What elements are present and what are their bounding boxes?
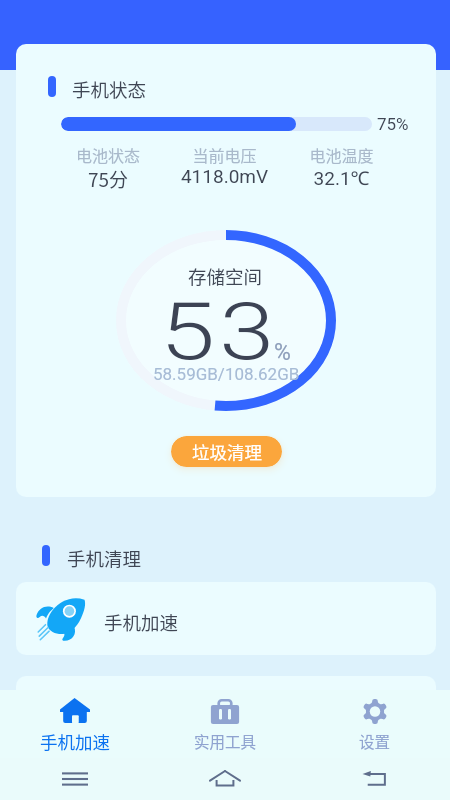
button[interactable]: 实用工具	[150, 696, 300, 752]
staticText: 4118.0mV	[166, 165, 283, 187]
button[interactable]: 手机加速	[0, 695, 150, 754]
staticText: 存储空间	[188, 263, 263, 290]
staticText: 75分	[50, 165, 166, 193]
button[interactable]: 垃圾清理	[171, 436, 282, 467]
staticText: 手机状态	[72, 76, 147, 103]
staticText: 手机清理	[67, 545, 142, 572]
staticText: 手机加速	[104, 609, 179, 636]
staticText: 电池温度	[283, 143, 400, 166]
staticText: %	[274, 339, 291, 366]
button[interactable]: 设置	[300, 696, 450, 752]
staticText: 75%	[377, 114, 409, 134]
staticText: 手机加速	[40, 729, 110, 754]
button[interactable]: 手机加速	[16, 582, 436, 655]
staticText: 垃圾清理	[192, 439, 262, 464]
button[interactable]	[16, 676, 436, 749]
staticText: 58.59GB/108.62GB	[153, 364, 300, 384]
staticText: 53	[160, 285, 279, 379]
staticText: 实用工具	[194, 730, 257, 752]
staticText: 电池状态	[50, 143, 166, 166]
other: Back	[362, 770, 388, 788]
staticText: 当前电压	[166, 143, 283, 166]
other: Recent apps	[62, 771, 88, 787]
staticText: 设置	[359, 730, 391, 752]
staticText: 32.1℃	[283, 165, 400, 191]
other: Home	[210, 769, 240, 789]
